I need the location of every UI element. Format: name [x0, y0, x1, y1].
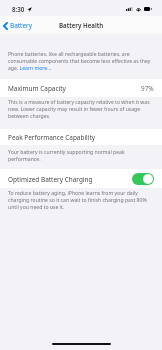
staticText: Battery: [10, 21, 33, 30]
staticText: Your battery is currently supporting nor…: [8, 149, 154, 163]
button[interactable]: Optimized Battery Charging: [0, 169, 162, 188]
staticText: To reduce battery aging, iPhone learns f…: [8, 190, 154, 211]
button[interactable]: Peak Performance Capability: [0, 129, 162, 145]
button[interactable]: Maximum Capacity: [0, 79, 162, 97]
staticText: 97%: [141, 84, 154, 93]
button[interactable]: Optimized Battery Charging: [132, 173, 154, 185]
staticText: 8:30: [12, 5, 25, 13]
staticText: Battery Health: [59, 21, 104, 29]
staticText: Peak Performance Capability: [8, 133, 96, 142]
staticText: This is a measure of battery capacity re…: [8, 99, 154, 120]
staticText: Optimized Battery Charging: [8, 175, 93, 184]
button[interactable]: Battery: [0, 19, 38, 32]
staticText: Maximum Capacity: [8, 84, 66, 93]
staticText: Phone batteries, like all rechargeable b…: [8, 51, 154, 72]
